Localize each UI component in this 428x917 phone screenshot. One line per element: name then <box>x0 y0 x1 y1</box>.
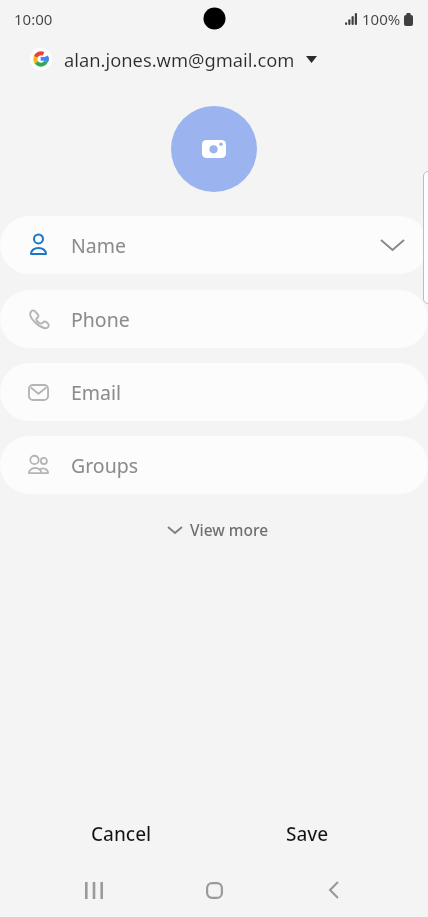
staticText: 10:00 <box>14 9 53 29</box>
staticText: Phone <box>71 306 130 333</box>
staticText: alan.jones.wm@gmail.com <box>64 47 295 72</box>
staticText: Save <box>286 821 329 847</box>
button[interactable]: Name <box>0 216 428 274</box>
staticText: Groups <box>71 452 139 479</box>
button[interactable]: Phone <box>0 290 428 348</box>
staticText: Name <box>71 232 126 259</box>
staticText: Email <box>71 379 122 406</box>
staticText: View more <box>190 519 269 540</box>
button[interactable]: Save <box>247 804 367 863</box>
button[interactable]: Cancel <box>61 804 181 863</box>
button[interactable]: Back <box>304 863 364 917</box>
button[interactable]: Groups <box>0 436 428 494</box>
button[interactable]: alan.jones.wm@gmail.com <box>0 37 428 81</box>
button[interactable]: Add photo <box>171 106 257 192</box>
button[interactable]: Recent apps <box>64 863 124 917</box>
button[interactable]: View more <box>148 509 281 550</box>
staticText: Cancel <box>91 821 152 847</box>
staticText: 100% <box>362 9 401 29</box>
button[interactable]: Home <box>184 863 244 917</box>
button[interactable]: Email <box>0 363 428 421</box>
